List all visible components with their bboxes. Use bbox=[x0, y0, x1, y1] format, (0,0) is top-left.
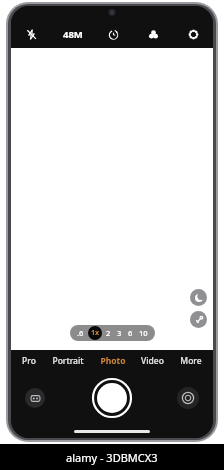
button[interactable]: More bbox=[175, 350, 207, 372]
button[interactable]: Flash off bbox=[11, 20, 52, 48]
staticText: Portrait bbox=[52, 355, 84, 367]
staticText: 6 bbox=[128, 328, 133, 338]
button[interactable]: Tools bbox=[190, 311, 207, 328]
button[interactable]: Settings bbox=[173, 20, 213, 48]
staticText: .6 bbox=[77, 328, 84, 338]
button[interactable]: Switch camera bbox=[177, 387, 199, 409]
button[interactable]: Video bbox=[136, 350, 169, 372]
button[interactable]: 3 bbox=[114, 326, 125, 340]
button[interactable]: 1x bbox=[88, 326, 102, 340]
button[interactable]: Photo bbox=[95, 350, 131, 372]
staticText: Photo bbox=[100, 355, 126, 367]
button[interactable]: 2 bbox=[103, 326, 114, 340]
button[interactable]: Gallery bbox=[25, 388, 45, 408]
staticText: alamy - 3DBMCX3 bbox=[66, 450, 158, 465]
button[interactable]: 48M bbox=[52, 20, 93, 48]
staticText: 48M bbox=[63, 28, 83, 41]
staticText: Video bbox=[141, 355, 164, 367]
staticText: Pro bbox=[22, 355, 36, 367]
button[interactable]: Color filters bbox=[133, 20, 173, 48]
staticText: More bbox=[180, 355, 202, 367]
button[interactable]: Take photo bbox=[93, 379, 131, 417]
staticText: 1x bbox=[91, 328, 100, 338]
button[interactable]: .6 bbox=[74, 326, 87, 340]
button[interactable]: Portrait bbox=[47, 350, 89, 372]
button[interactable]: Timer bbox=[93, 20, 133, 48]
staticText: 2 bbox=[106, 328, 111, 338]
button[interactable]: Pro bbox=[17, 350, 41, 372]
button[interactable]: 6 bbox=[125, 326, 136, 340]
button[interactable]: 10 bbox=[136, 326, 151, 340]
button[interactable]: Night mode bbox=[190, 289, 207, 306]
staticText: 10 bbox=[139, 328, 148, 338]
staticText: 3 bbox=[117, 328, 122, 338]
